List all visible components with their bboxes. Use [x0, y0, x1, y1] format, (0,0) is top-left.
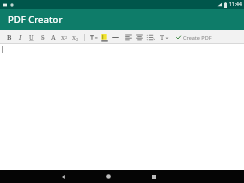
staticText: I: [19, 33, 22, 42]
button[interactable]: Underline: [26, 32, 37, 43]
button[interactable]: Italic: [15, 32, 26, 43]
button[interactable]: Home: [102, 170, 115, 183]
button[interactable]: Align center: [134, 32, 145, 43]
staticText: 2: [65, 35, 68, 40]
staticText: 11:44: [229, 1, 242, 8]
staticText: Create PDF: [183, 34, 212, 41]
button[interactable]: Subscript: [70, 32, 81, 43]
button[interactable]: Lists: [145, 32, 156, 43]
button[interactable]: Font size: [88, 32, 99, 43]
staticText: 2: [76, 37, 79, 42]
button[interactable]: Bold: [4, 32, 15, 43]
button[interactable]: Align left: [123, 32, 134, 43]
staticText: X: [61, 34, 65, 42]
button[interactable]: Recent apps: [147, 170, 160, 183]
staticText: U: [29, 33, 34, 42]
staticText: T: [160, 33, 165, 42]
staticText: A: [51, 33, 56, 42]
staticText: PDF Creator: [8, 13, 63, 26]
button[interactable]: Text color: [48, 32, 59, 43]
button[interactable]: Superscript: [59, 32, 70, 43]
button[interactable]: Strikethrough: [37, 32, 48, 43]
button[interactable]: Clear formatting: [110, 32, 121, 43]
staticText: X: [72, 34, 76, 42]
staticText: B: [7, 33, 12, 42]
staticText: S: [41, 33, 45, 42]
button[interactable]: Text style: [159, 32, 170, 43]
button[interactable]: Highlight: [99, 32, 110, 43]
button[interactable]: Create PDF: [174, 33, 214, 42]
button[interactable]: Back: [57, 170, 70, 183]
